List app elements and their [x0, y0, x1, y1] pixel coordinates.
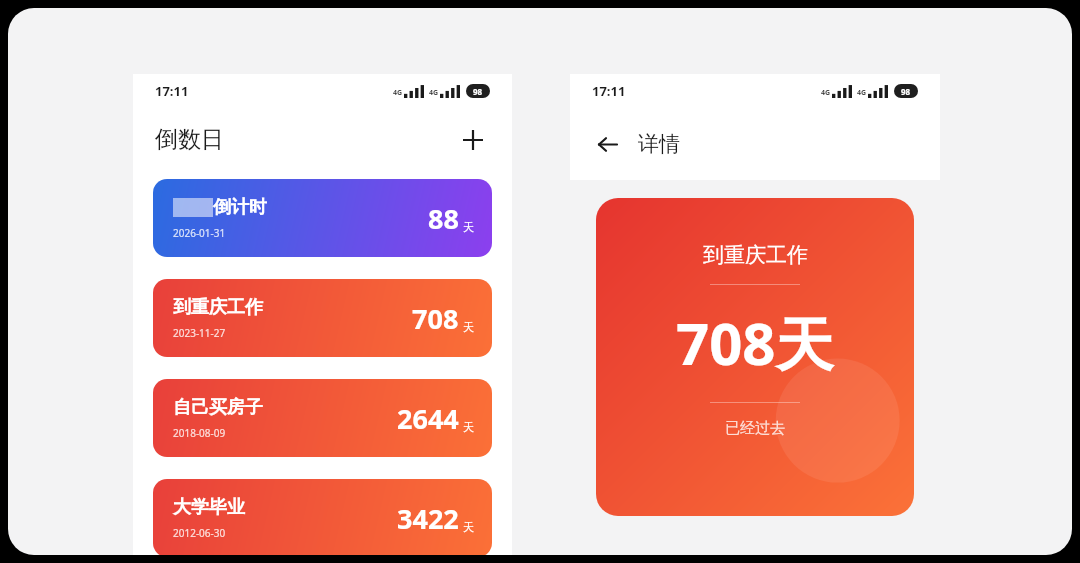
staticText: 17:11 — [155, 82, 189, 100]
button[interactable]: 到重庆工作 — [153, 279, 492, 357]
staticText: 4G — [429, 88, 439, 98]
staticText: 708 — [412, 300, 459, 337]
staticText: 倒计时 — [213, 196, 267, 219]
staticText: 708天 — [676, 303, 834, 382]
button[interactable]: 自己买房子 — [153, 379, 492, 457]
staticText: 自己买房子 — [173, 396, 263, 419]
staticText: 98 — [901, 86, 911, 97]
staticText: 到重庆工作 — [173, 296, 263, 319]
staticText: 17:11 — [592, 82, 626, 100]
staticText: 2018-08-09 — [173, 426, 226, 440]
staticText: 已经过去 — [725, 419, 785, 438]
staticText: 2012-06-30 — [173, 526, 226, 540]
staticText: 天 — [463, 220, 474, 234]
staticText: 大学毕业 — [173, 496, 245, 519]
button[interactable]: 到重庆工作 — [596, 198, 914, 516]
staticText: 倒数日 — [155, 125, 224, 154]
staticText: 4G — [393, 88, 403, 98]
button[interactable]: 大学毕业 — [153, 479, 492, 555]
staticText: 天 — [463, 520, 474, 534]
staticText: 2023-11-27 — [173, 326, 226, 340]
button[interactable]: 倒计时 — [153, 179, 492, 257]
staticText: 到重庆工作 — [703, 242, 808, 268]
staticText: 2644 — [397, 400, 459, 437]
staticText: 88 — [428, 200, 459, 237]
staticText: 4G — [857, 88, 867, 98]
staticText: 4G — [821, 88, 831, 98]
button[interactable]: Add countdown — [456, 123, 490, 157]
staticText: 98 — [473, 86, 483, 97]
staticText: 详情 — [638, 131, 680, 157]
staticText: 天 — [463, 420, 474, 434]
staticText: 3422 — [397, 500, 459, 537]
staticText: 2026-01-31 — [173, 226, 226, 240]
staticText: 天 — [463, 320, 474, 334]
button[interactable]: Back — [590, 127, 624, 161]
